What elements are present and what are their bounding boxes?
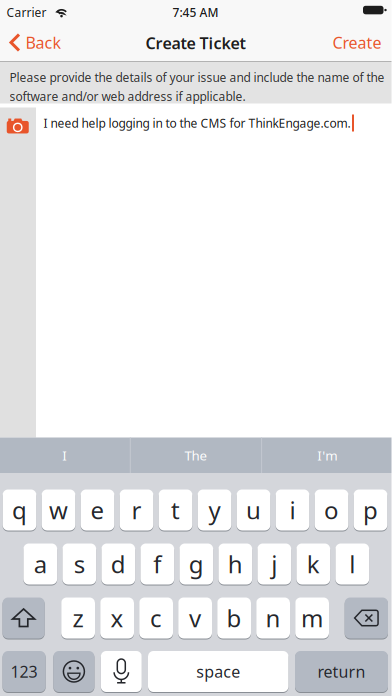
staticText: p: [363, 494, 378, 526]
button[interactable]: d: [101, 543, 135, 584]
staticText: h: [228, 548, 243, 580]
button[interactable]: m: [295, 597, 329, 638]
button[interactable]: I'm: [262, 437, 392, 473]
staticText: l: [349, 548, 355, 580]
button[interactable]: I: [0, 437, 130, 473]
button[interactable]: a: [23, 543, 57, 584]
staticText: Please provide the details of your issue…: [9, 69, 384, 85]
staticText: d: [111, 548, 126, 580]
button[interactable]: e: [81, 489, 114, 530]
staticText: I: [62, 446, 67, 464]
staticText: a: [34, 548, 47, 580]
staticText: Back: [25, 32, 61, 53]
staticText: i: [289, 494, 295, 526]
button[interactable]: i: [276, 489, 309, 530]
button[interactable]: Delete: [345, 597, 388, 638]
button[interactable]: o: [315, 489, 348, 530]
button[interactable]: z: [61, 597, 95, 638]
staticText: r: [131, 494, 141, 526]
staticText: Carrier: [6, 4, 46, 20]
button[interactable]: u: [237, 489, 270, 530]
button[interactable]: t: [159, 489, 192, 530]
button[interactable]: j: [257, 543, 291, 584]
staticText: The: [184, 446, 207, 464]
staticText: I need help logging in to the CMS for Th…: [43, 115, 350, 131]
staticText: j: [271, 548, 277, 580]
button[interactable]: b: [217, 597, 251, 638]
staticText: k: [307, 548, 320, 580]
staticText: software and/or web address if applicabl…: [9, 88, 245, 104]
staticText: space: [196, 661, 240, 682]
staticText: return: [317, 661, 365, 682]
staticText: f: [153, 548, 161, 580]
button[interactable]: l: [335, 543, 369, 584]
button[interactable]: w: [42, 489, 75, 530]
button[interactable]: p: [354, 489, 387, 530]
staticText: w: [49, 494, 68, 526]
staticText: g: [189, 548, 204, 580]
staticText: 7:45 AM: [172, 4, 218, 20]
button[interactable]: n: [256, 597, 290, 638]
button[interactable]: h: [218, 543, 252, 584]
button[interactable]: return: [295, 651, 388, 692]
button[interactable]: space: [148, 651, 288, 692]
button[interactable]: x: [100, 597, 134, 638]
button[interactable]: Shift: [3, 597, 45, 638]
button[interactable]: Emoji: [53, 651, 94, 692]
button[interactable]: v: [178, 597, 212, 638]
button[interactable]: Create: [332, 24, 381, 61]
staticText: z: [73, 602, 84, 634]
staticText: x: [111, 602, 124, 634]
staticText: v: [189, 602, 201, 634]
staticText: n: [266, 602, 281, 634]
button[interactable]: k: [296, 543, 330, 584]
staticText: I'm: [317, 446, 337, 464]
button[interactable]: Back: [9, 24, 61, 61]
staticText: e: [90, 494, 104, 526]
staticText: s: [74, 548, 85, 580]
button[interactable]: c: [139, 597, 173, 638]
button[interactable]: g: [179, 543, 213, 584]
staticText: q: [12, 494, 27, 526]
button[interactable]: Dictate: [101, 651, 142, 692]
staticText: Create Ticket: [145, 32, 245, 54]
button[interactable]: q: [3, 489, 36, 530]
staticText: m: [301, 602, 323, 634]
button[interactable]: f: [140, 543, 174, 584]
button[interactable]: s: [62, 543, 96, 584]
button[interactable]: The: [131, 437, 261, 473]
staticText: Create: [332, 32, 381, 53]
staticText: t: [171, 494, 180, 526]
button[interactable]: r: [120, 489, 153, 530]
staticText: u: [246, 494, 261, 526]
staticText: c: [150, 602, 162, 634]
button[interactable]: Add photo: [0, 108, 36, 144]
staticText: o: [324, 494, 339, 526]
button[interactable]: y: [198, 489, 231, 530]
staticText: b: [227, 602, 242, 634]
button[interactable]: Numbers: [3, 651, 46, 692]
staticText: y: [208, 494, 220, 526]
staticText: 123: [11, 661, 38, 682]
